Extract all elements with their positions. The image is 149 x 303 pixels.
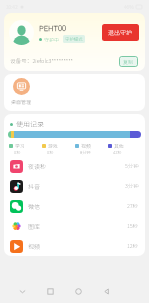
staticText: 夜读秒	[28, 162, 47, 171]
button[interactable]: 退出守护	[102, 24, 139, 41]
staticText: 其他	[114, 142, 124, 149]
staticText: PEHT00	[39, 22, 67, 33]
button[interactable]: Back	[97, 282, 115, 300]
staticText: 桌面管理	[11, 98, 32, 105]
staticText: 27秒	[127, 202, 139, 210]
staticText: 学习	[15, 142, 25, 149]
staticText: 0秒	[47, 149, 54, 155]
staticText: 0秒	[14, 149, 21, 155]
staticText: 15秒	[127, 222, 139, 230]
button[interactable]: Home	[69, 282, 87, 300]
staticText: 守护模式	[65, 36, 83, 42]
staticText: 抖音	[28, 182, 41, 191]
staticText: 5分钟	[125, 162, 139, 170]
staticText: 游戏	[48, 142, 58, 149]
button[interactable]: 桌面管理	[11, 78, 32, 105]
staticText: 视频	[81, 142, 91, 149]
button[interactable]: 复制	[119, 56, 138, 67]
staticText: 视频	[28, 242, 41, 251]
button[interactable]: 抖音	[8, 176, 141, 196]
staticText: 退出守护	[108, 28, 133, 37]
staticText: 守护中	[44, 36, 60, 43]
staticText: 3分钟	[125, 182, 139, 190]
button[interactable]: Hide	[13, 282, 31, 300]
staticText: 12秒	[127, 242, 139, 250]
button[interactable]: Recents	[41, 282, 59, 300]
button[interactable]: 视频	[8, 236, 141, 256]
button[interactable]: 微信	[8, 196, 141, 216]
button[interactable]: 夜读秒	[8, 156, 141, 176]
staticText: 42秒	[113, 149, 122, 155]
staticText: 使用记录	[16, 119, 44, 129]
button[interactable]: 图库	[8, 216, 141, 236]
staticText: 复制	[123, 58, 134, 65]
staticText: 图库	[28, 222, 41, 231]
staticText: 微信	[28, 202, 41, 211]
staticText: 设备号：2iefolc3*********	[10, 57, 73, 65]
staticText: 8分钟	[80, 149, 91, 155]
